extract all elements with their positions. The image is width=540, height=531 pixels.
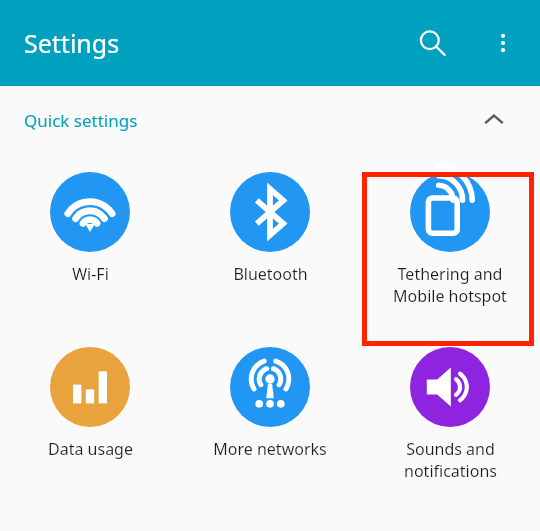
staticText: Quick settings — [24, 109, 138, 132]
button[interactable]: More options — [479, 19, 527, 67]
button[interactable]: Quick settings — [0, 86, 540, 154]
button[interactable]: More networks — [180, 329, 360, 504]
staticText: Settings — [24, 26, 120, 60]
staticText: Tethering and Mobile hotspot — [393, 263, 507, 307]
button[interactable]: Tethering and Mobile hotspot — [360, 154, 540, 329]
other: Collapse — [474, 100, 514, 140]
staticText: Bluetooth — [233, 263, 308, 285]
staticText: Data usage — [48, 438, 133, 460]
staticText: More networks — [213, 438, 327, 460]
button[interactable]: Data usage — [0, 329, 180, 504]
staticText: Wi-Fi — [72, 263, 109, 285]
button[interactable]: Sounds and notifications — [360, 329, 540, 504]
button[interactable]: Search — [408, 19, 456, 67]
button[interactable]: Wi-Fi — [0, 154, 180, 329]
button[interactable]: Bluetooth — [180, 154, 360, 329]
staticText: Sounds and notifications — [404, 438, 497, 482]
